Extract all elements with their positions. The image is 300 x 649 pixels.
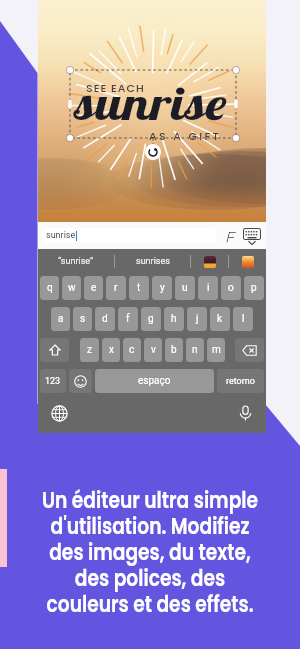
button[interactable]: q — [40, 276, 59, 300]
staticText: c — [129, 344, 135, 356]
button[interactable]: Hide keyboard — [241, 225, 263, 247]
button[interactable]: u — [175, 276, 195, 300]
button[interactable]: d — [95, 307, 115, 331]
staticText: w — [68, 282, 76, 294]
staticText: retorno — [226, 376, 255, 387]
button[interactable] — [40, 338, 69, 362]
staticText: f — [126, 313, 130, 325]
staticText: m — [212, 344, 221, 356]
staticText: u — [182, 282, 188, 294]
staticText: i — [207, 282, 210, 294]
staticText: SEE EACH — [86, 80, 145, 95]
button[interactable]: b — [165, 338, 183, 362]
button[interactable]: c — [123, 338, 141, 362]
button[interactable]: p — [244, 276, 264, 300]
button[interactable]: “sunrise” — [38, 249, 114, 274]
button[interactable]: f — [118, 307, 138, 331]
staticText: v — [151, 344, 156, 356]
staticText: t — [137, 282, 141, 294]
button[interactable]: e — [84, 276, 103, 300]
staticText: AS A GIFT — [149, 128, 222, 143]
button[interactable]: l — [233, 307, 253, 331]
button[interactable]: r — [106, 276, 126, 300]
button[interactable]: t — [129, 276, 149, 300]
staticText: “sunrise” — [58, 256, 94, 267]
button[interactable] — [69, 369, 92, 393]
staticText: j — [196, 313, 199, 325]
staticText: p — [251, 282, 257, 294]
staticText: h — [171, 313, 177, 325]
staticText: espaço — [138, 375, 171, 387]
button[interactable] — [235, 338, 264, 362]
staticText: o — [228, 282, 234, 294]
staticText: g — [148, 313, 154, 325]
button[interactable]: Change keyboard language — [38, 393, 80, 433]
button[interactable]: w — [62, 276, 81, 300]
staticText: x — [109, 344, 114, 356]
button[interactable]: y — [152, 276, 172, 300]
button[interactable]: 123 — [40, 369, 66, 393]
button[interactable]: o — [221, 276, 241, 300]
button[interactable]: sunrises — [115, 249, 190, 274]
button[interactable]: Photo suggestion — [229, 249, 266, 274]
button[interactable]: k — [210, 307, 230, 331]
staticText: s — [80, 313, 86, 325]
button[interactable]: v — [144, 338, 162, 362]
staticText: Un éditeur ultra simple d'utilisation. M… — [38, 484, 262, 620]
staticText: y — [160, 282, 165, 294]
staticText: 123 — [45, 376, 61, 387]
button[interactable]: sunrise — [42, 228, 216, 243]
staticText: r — [114, 282, 118, 294]
button[interactable]: x — [102, 338, 120, 362]
button[interactable]: h — [164, 307, 184, 331]
button[interactable]: n — [186, 338, 204, 362]
staticText: F — [225, 228, 234, 245]
staticText: sunrises — [136, 256, 170, 267]
staticText: d — [102, 313, 108, 325]
button[interactable]: i — [198, 276, 218, 300]
staticText: z — [87, 344, 92, 356]
button[interactable]: j — [187, 307, 207, 331]
button[interactable]: g — [141, 307, 161, 331]
button[interactable]: espaço — [95, 369, 214, 393]
button[interactable]: s — [73, 307, 92, 331]
staticText: n — [192, 344, 198, 356]
button[interactable]: Font — [220, 227, 238, 245]
staticText: sunrise — [74, 75, 228, 131]
staticText: a — [58, 313, 64, 325]
button[interactable]: Sticker suggestion — [191, 249, 228, 274]
staticText: q — [47, 282, 53, 294]
staticText: l — [242, 313, 245, 325]
button[interactable]: Voice input — [224, 393, 266, 433]
staticText: k — [217, 313, 223, 325]
staticText: e — [91, 282, 97, 294]
staticText: sunrise — [46, 230, 76, 241]
button[interactable]: a — [51, 307, 70, 331]
button[interactable]: m — [207, 338, 225, 362]
button[interactable]: retorno — [217, 369, 264, 393]
staticText: b — [171, 344, 177, 356]
button[interactable]: z — [80, 338, 99, 362]
